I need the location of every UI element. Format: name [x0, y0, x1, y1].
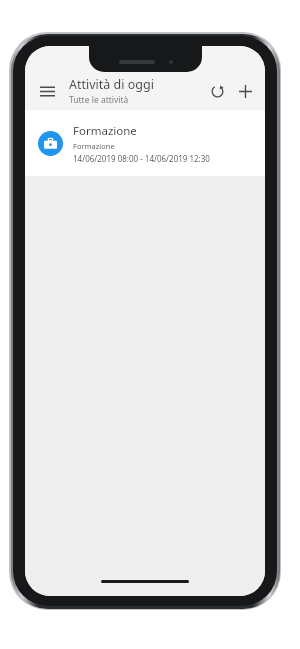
staticText: Formazione [73, 141, 115, 151]
staticText: Attività di oggi [69, 76, 154, 93]
button[interactable]: Formazione [25, 110, 265, 176]
staticText: Tutte le attività [69, 94, 129, 106]
staticText: 14/06/2019 08:00 - 14/06/2019 12:30 [73, 153, 210, 164]
staticText: Formazione [73, 123, 137, 139]
button[interactable]: Refresh [203, 77, 231, 105]
button[interactable]: Menu [33, 77, 61, 105]
button[interactable]: Add [231, 77, 259, 105]
